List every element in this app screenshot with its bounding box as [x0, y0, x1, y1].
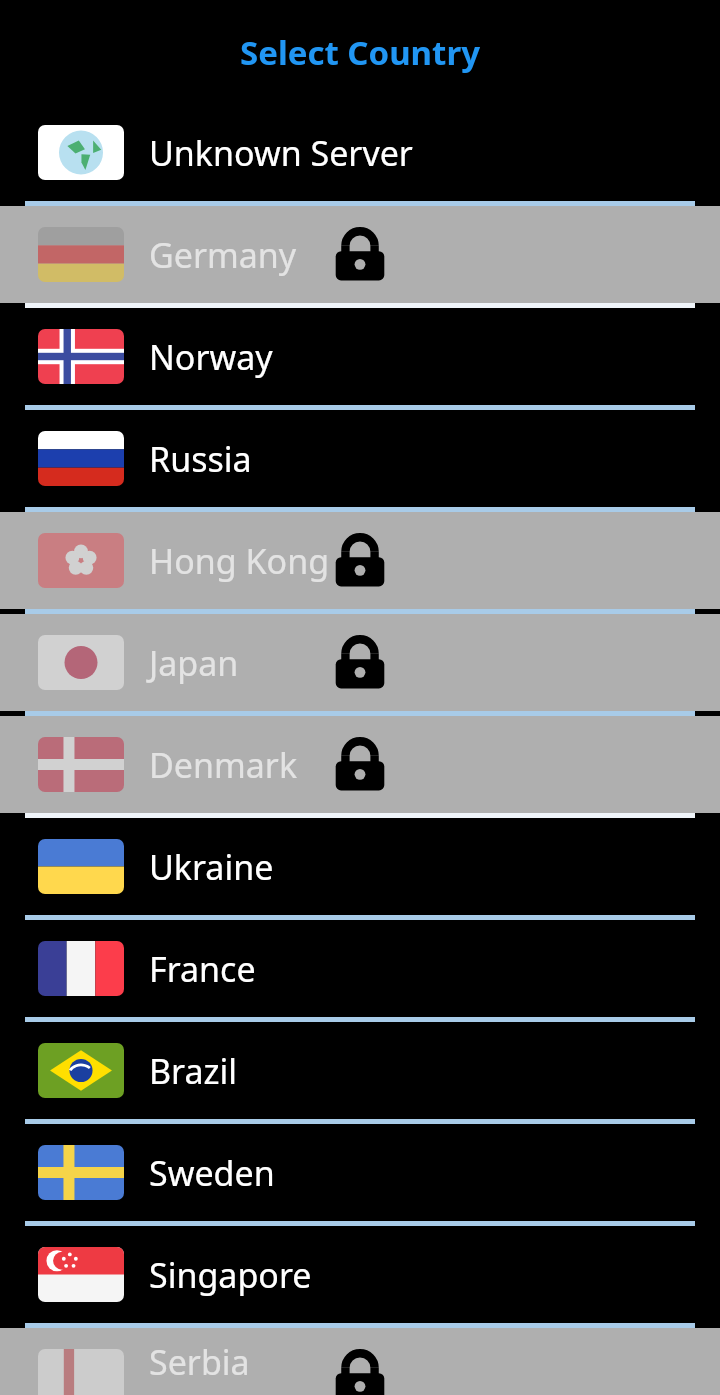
button[interactable]: Serbia	[0, 1328, 720, 1395]
staticText: Hong Kong	[149, 538, 330, 584]
staticText: Sweden	[149, 1150, 275, 1196]
staticText: Serbia	[149, 1339, 250, 1385]
button[interactable]: Norway	[0, 308, 720, 405]
button[interactable]: Unknown Server	[0, 104, 720, 201]
button[interactable]: Locked	[333, 636, 387, 690]
staticText: France	[149, 946, 256, 992]
staticText: Japan	[149, 640, 239, 686]
staticText: Select Country	[240, 30, 480, 75]
button[interactable]: Russia	[0, 410, 720, 507]
button[interactable]: Sweden	[0, 1124, 720, 1221]
staticText: Denmark	[149, 742, 298, 788]
button[interactable]: Brazil	[0, 1022, 720, 1119]
staticText: Ukraine	[149, 844, 274, 890]
button[interactable]: Locked	[333, 228, 387, 282]
staticText: Norway	[149, 334, 273, 380]
button[interactable]: Ukraine	[0, 818, 720, 915]
button[interactable]: Singapore	[0, 1226, 720, 1323]
button[interactable]: Hong Kong	[0, 512, 720, 609]
button[interactable]: Germany	[0, 206, 720, 303]
button[interactable]: Japan	[0, 614, 720, 711]
staticText: Russia	[149, 436, 252, 482]
button[interactable]: France	[0, 920, 720, 1017]
staticText: Germany	[149, 232, 297, 278]
button[interactable]: Locked	[333, 534, 387, 588]
button[interactable]: Locked	[333, 1350, 387, 1395]
button[interactable]: Locked	[333, 738, 387, 792]
staticText: Unknown Server	[149, 130, 413, 176]
staticText: Singapore	[149, 1252, 312, 1298]
button[interactable]: Denmark	[0, 716, 720, 813]
staticText: Brazil	[149, 1048, 238, 1094]
